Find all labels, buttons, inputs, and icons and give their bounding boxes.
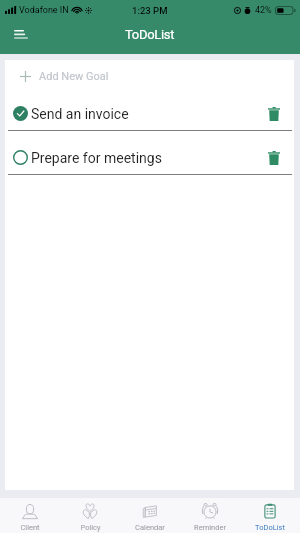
button[interactable]: ToDoList [240,498,300,533]
button[interactable]: Delete [267,107,281,121]
button[interactable]: Send an invoice [0,87,300,130]
button[interactable]: Add New Goal [0,65,300,87]
button[interactable]: Reminder [180,498,240,533]
staticText: Calendar [135,523,165,532]
button[interactable]: Client [0,498,60,533]
staticText: Client [20,523,40,532]
staticText: Prepare for meetings [31,150,162,166]
button[interactable]: Policy [60,498,120,533]
staticText: Policy [80,523,101,532]
button[interactable]: Prepare for meetings [0,131,300,174]
button[interactable]: Menu [8,21,34,47]
button[interactable]: Delete [267,151,281,165]
button[interactable]: Calendar [120,498,180,533]
staticText: ToDoList [255,523,285,532]
staticText: 42% [255,5,272,16]
staticText: Add New Goal [39,70,109,83]
staticText: ToDoList [125,27,175,42]
staticText: Send an invoice [31,106,129,122]
staticText: Reminder [194,523,226,532]
staticText: Vodafone IN [19,5,69,16]
staticText: 1:23 PM [132,5,168,16]
